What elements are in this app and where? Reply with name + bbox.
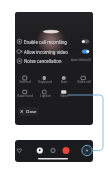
- button[interactable]: Option: [15, 73, 35, 86]
- button[interactable]: ✕ Close: [17, 107, 39, 116]
- staticText: Keyboard: [38, 80, 52, 84]
- button[interactable]: Allow incoming video: [15, 47, 93, 57]
- button[interactable]: End call: [59, 143, 73, 157]
- button[interactable]: Option: [54, 73, 74, 86]
- staticText: Allow incoming video: [24, 49, 68, 55]
- staticText: Video call: [77, 80, 91, 84]
- staticText: Internal: [19, 80, 31, 84]
- button[interactable]: More options: [80, 143, 93, 157]
- staticText: Noise cancellation: [24, 58, 62, 64]
- staticText: Enable call recording: [24, 39, 67, 45]
- button[interactable]: Video: [46, 143, 60, 157]
- staticText: Caption: [40, 94, 51, 98]
- button[interactable]: Option: [74, 73, 93, 86]
- button[interactable]: Option: [15, 87, 35, 100]
- staticText: Video upgrade: [54, 94, 74, 98]
- button[interactable]: Enable call recording: [15, 37, 93, 47]
- staticText: Start recording: [54, 80, 74, 84]
- button[interactable]: Option: [54, 87, 74, 100]
- staticText: Raise hand: [17, 94, 33, 98]
- button[interactable]: Option: [35, 73, 55, 86]
- button[interactable]: Mute: [33, 143, 47, 157]
- staticText: ✕ Close: [20, 109, 37, 115]
- button[interactable]: Add to favourites: [15, 143, 29, 157]
- button[interactable]: Noise cancellation: [15, 56, 93, 66]
- button[interactable]: Option: [35, 87, 55, 100]
- staticText: Auto (default): [71, 58, 91, 62]
